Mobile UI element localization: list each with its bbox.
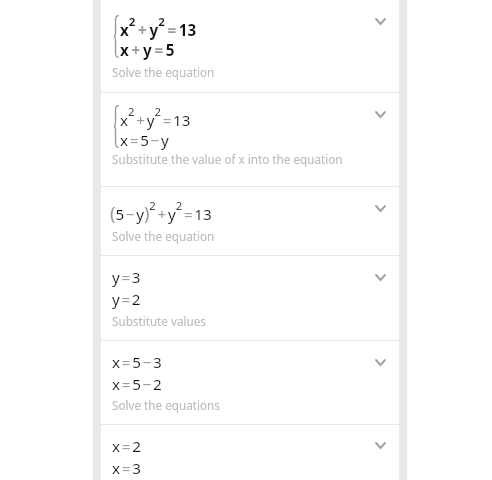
staticText: (5 − y)2 + y2 = 13 bbox=[110, 198, 212, 226]
button[interactable]: x = 2 x = 3 bbox=[101, 425, 399, 479]
staticText: x = 2 x = 3 bbox=[112, 436, 141, 478]
staticText: Solve the equations bbox=[112, 397, 220, 413]
staticText: y = 3 y = 2 bbox=[112, 267, 141, 309]
staticText: x2 + y2 = 13 x + y = 5 bbox=[120, 14, 197, 60]
button[interactable]: Expand step bbox=[365, 6, 395, 36]
button[interactable]: Expand step bbox=[365, 262, 395, 292]
staticText: x2 + y2 = 13 x = 5 − y bbox=[120, 104, 191, 151]
button[interactable]: Expand step bbox=[365, 347, 395, 377]
staticText: x = 5 − 3 x = 5 − 2 bbox=[112, 352, 162, 394]
button[interactable]: y = 3 y = 2 bbox=[101, 256, 399, 340]
staticText: Substitute the value of x into the equat… bbox=[112, 151, 343, 167]
button[interactable]: x2 + y2 = 13 x + y = 5 bbox=[101, 0, 399, 92]
button[interactable]: Expand step bbox=[365, 193, 395, 223]
button[interactable]: x2 + y2 = 13 x = 5 − y bbox=[101, 93, 399, 186]
button[interactable]: x = 5 − 3 x = 5 − 2 bbox=[101, 341, 399, 424]
staticText: Solve the equation bbox=[112, 228, 215, 244]
staticText: Substitute values bbox=[112, 313, 206, 329]
button[interactable]: (5 − y)2 + y2 = 13 bbox=[101, 187, 399, 255]
staticText: Solve the equation bbox=[112, 64, 215, 80]
button[interactable]: Expand step bbox=[365, 430, 395, 460]
button[interactable]: Expand step bbox=[365, 99, 395, 129]
